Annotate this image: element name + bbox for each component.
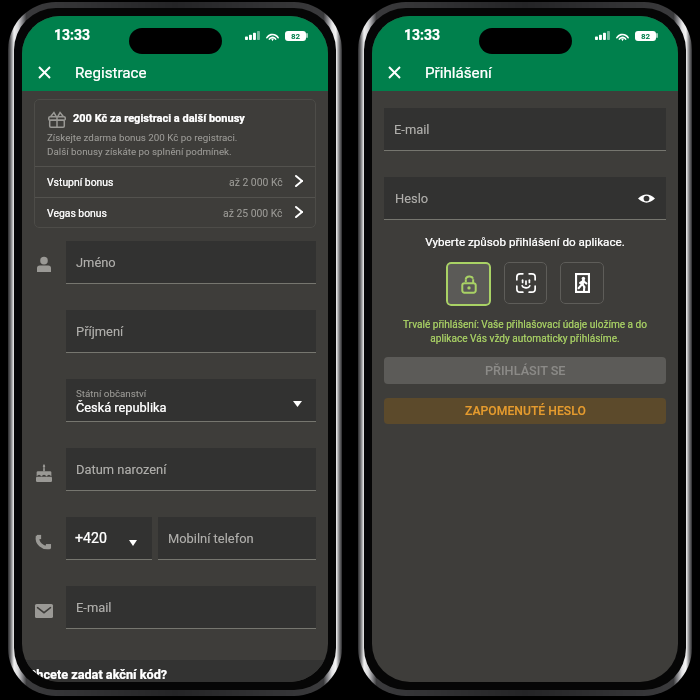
staticText: E-mail — [394, 122, 430, 137]
staticText: 13:33 — [404, 27, 441, 43]
staticText: Vegas bonus — [47, 207, 107, 219]
staticText: Chcete zadat akční kód? — [28, 667, 168, 682]
staticText: Registrace — [75, 64, 147, 82]
button[interactable]: E-mail — [384, 108, 666, 151]
button[interactable]: Heslo — [384, 177, 666, 220]
button[interactable]: PŘIHLÁSIT SE — [384, 357, 666, 384]
staticText: Jméno — [76, 255, 116, 270]
staticText: Heslo — [395, 191, 429, 206]
button[interactable]: +420 — [66, 517, 152, 560]
staticText: 82 — [291, 32, 301, 41]
staticText: 13:33 — [54, 27, 91, 43]
staticText: až 25 000 Kč — [223, 207, 283, 219]
button[interactable]: E-mail — [66, 586, 316, 629]
button[interactable]: Close — [27, 55, 61, 89]
staticText: PŘIHLÁSIT SE — [485, 363, 566, 378]
staticText: až 2 000 Kč — [229, 176, 283, 188]
staticText: 82 — [641, 32, 651, 41]
staticText: E-mail — [76, 600, 112, 615]
staticText: +420 — [75, 530, 107, 547]
staticText: 200 Kč za registraci a další bonusy — [73, 112, 245, 125]
button[interactable]: Datum narození — [66, 448, 316, 491]
staticText: Získejte zdarma bonus 200 Kč po registra… — [47, 132, 238, 157]
button[interactable]: Státní občanství — [66, 379, 316, 422]
staticText: Mobilní telefon — [168, 531, 254, 546]
button[interactable]: ZAPOMENUTÉ HESLO — [384, 398, 666, 424]
staticText: Přihlášení — [425, 64, 492, 82]
staticText: Česká republika — [76, 400, 167, 415]
staticText: Trvalé přihlášení: Vaše přihlašovací úda… — [382, 319, 668, 345]
button[interactable]: Password login — [446, 262, 491, 306]
staticText: Státní občanství — [76, 388, 147, 399]
button[interactable]: Příjmení — [66, 310, 316, 353]
staticText: Vstupní bonus — [47, 176, 114, 188]
button[interactable]: Show password — [634, 186, 658, 210]
button[interactable]: Vstupní bonus — [34, 167, 316, 197]
button[interactable]: Mobilní telefon — [158, 517, 316, 560]
button[interactable]: Chcete zadat akční kód? — [22, 660, 328, 682]
button[interactable]: Quick login — [560, 262, 604, 304]
staticText: ZAPOMENUTÉ HESLO — [465, 404, 586, 418]
button[interactable]: Close — [377, 55, 411, 89]
button[interactable]: Face ID login — [504, 262, 547, 304]
staticText: Datum narození — [76, 462, 167, 477]
staticText: Vyberte způsob přihlášení do aplikace. — [372, 235, 678, 249]
button[interactable]: Vegas bonus — [34, 198, 316, 228]
button[interactable]: Jméno — [66, 241, 316, 284]
staticText: Příjmení — [76, 324, 124, 339]
